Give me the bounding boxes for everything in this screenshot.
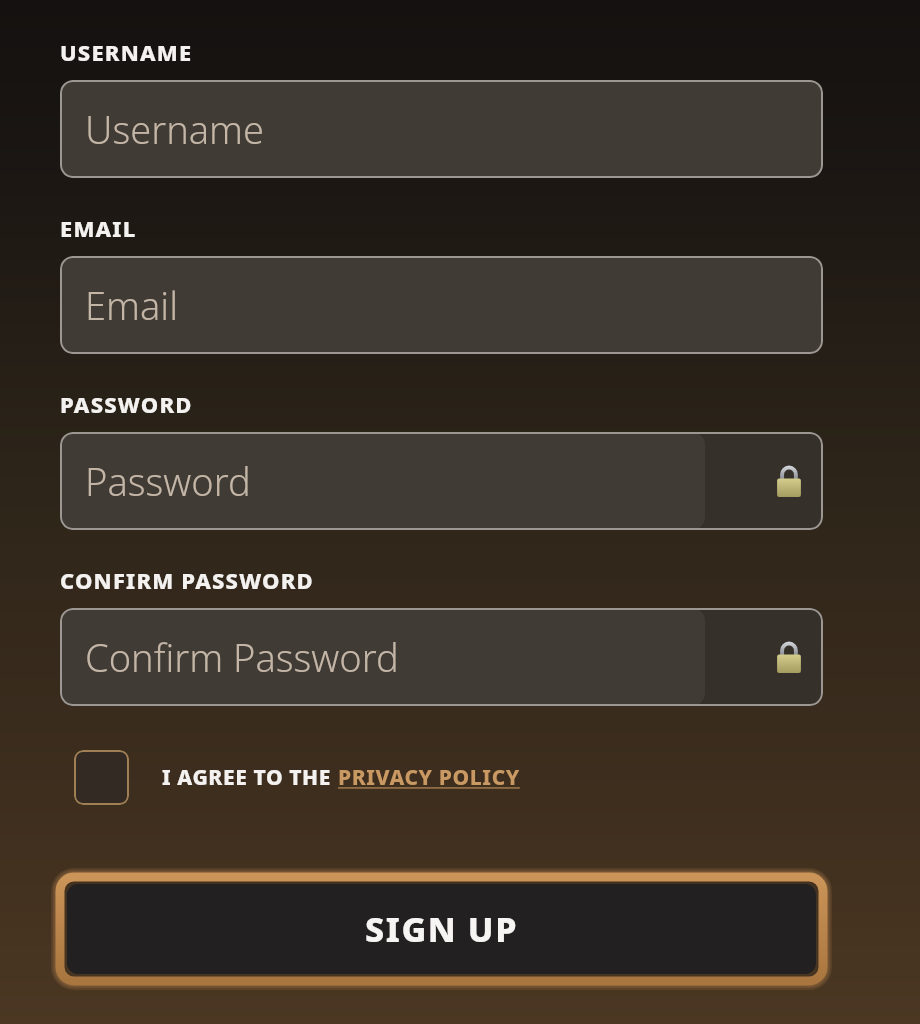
staticText: Password xyxy=(85,455,251,507)
staticText: EMAIL xyxy=(60,213,137,243)
button[interactable]: Confirm Password xyxy=(60,608,705,706)
staticText: CONFIRM PASSWORD xyxy=(60,565,314,595)
staticText: PASSWORD xyxy=(60,389,193,419)
button[interactable]: PRIVACY POLICY xyxy=(338,763,520,792)
button[interactable]: Agree to privacy policy xyxy=(74,750,520,805)
staticText: Confirm Password xyxy=(85,631,399,683)
staticText: USERNAME xyxy=(60,37,193,67)
button[interactable]: SIGN UP xyxy=(60,877,823,981)
staticText: Username xyxy=(85,103,265,155)
other: Agree to privacy policy xyxy=(74,750,129,805)
button[interactable]: Show confirm password xyxy=(755,608,823,706)
staticText: SIGN UP xyxy=(365,906,519,952)
button[interactable]: Show password xyxy=(755,432,823,530)
button[interactable]: Username xyxy=(60,80,823,178)
button[interactable]: Password xyxy=(60,432,705,530)
staticText: Email xyxy=(85,279,178,331)
staticText: PRIVACY POLICY xyxy=(338,763,520,792)
button[interactable]: Email xyxy=(60,256,823,354)
staticText: I AGREE TO THE xyxy=(162,763,338,792)
